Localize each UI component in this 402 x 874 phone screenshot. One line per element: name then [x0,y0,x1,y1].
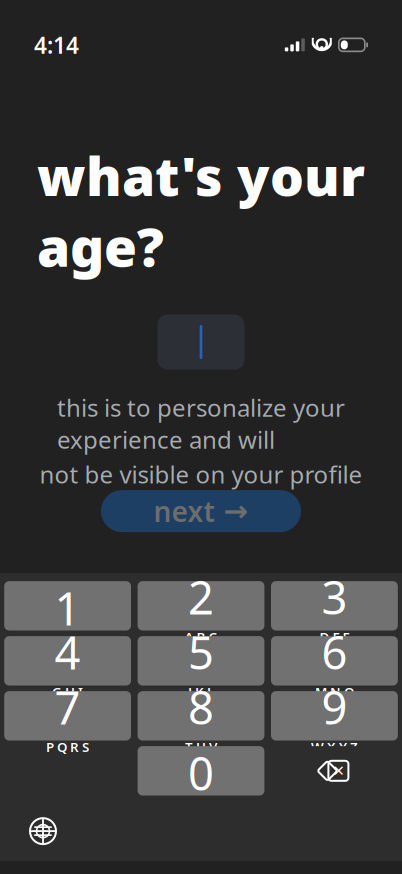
staticText: M N O [315,683,354,701]
button[interactable]: 9 [271,691,398,740]
staticText: 6 [321,622,347,682]
button[interactable]: 3 [271,581,398,630]
button[interactable]: next [101,490,301,532]
staticText: 4:14 [34,30,79,60]
staticText: 7 [55,677,81,737]
staticText: 1 [55,578,81,638]
staticText: 5 [188,622,214,682]
staticText: A B C [184,628,217,646]
staticText: what's your age? [37,140,365,281]
staticText: → [223,494,248,528]
staticText: W X Y Z [311,738,358,756]
staticText: ✕ [332,762,344,779]
button[interactable]: 0 [138,746,264,795]
staticText: 2 [188,567,214,627]
button[interactable]: 1 [4,581,131,630]
button[interactable]: 4 [4,636,131,685]
staticText: P Q R S [46,738,89,756]
staticText: G H I [52,683,83,701]
button[interactable]: Delete [271,746,398,795]
staticText: this is to personalize your experience a… [57,391,345,455]
button[interactable]: Next keyboard [17,805,69,857]
staticText: 3 [321,567,347,627]
staticText: J K L [188,683,214,701]
button[interactable]: 6 [271,636,398,685]
staticText: D E F [319,628,349,646]
staticText: 4 [55,622,81,682]
staticText: 8 [188,677,214,737]
staticText: T U V [185,738,217,756]
staticText: 0 [188,743,214,803]
staticText: next [153,492,214,530]
button[interactable]: 2 [138,581,264,630]
staticText: not be visible on your profile [39,458,362,490]
button[interactable]: 8 [138,691,264,740]
staticText: 9 [321,677,347,737]
button[interactable]: 7 [4,691,131,740]
button[interactable]: 5 [138,636,264,685]
